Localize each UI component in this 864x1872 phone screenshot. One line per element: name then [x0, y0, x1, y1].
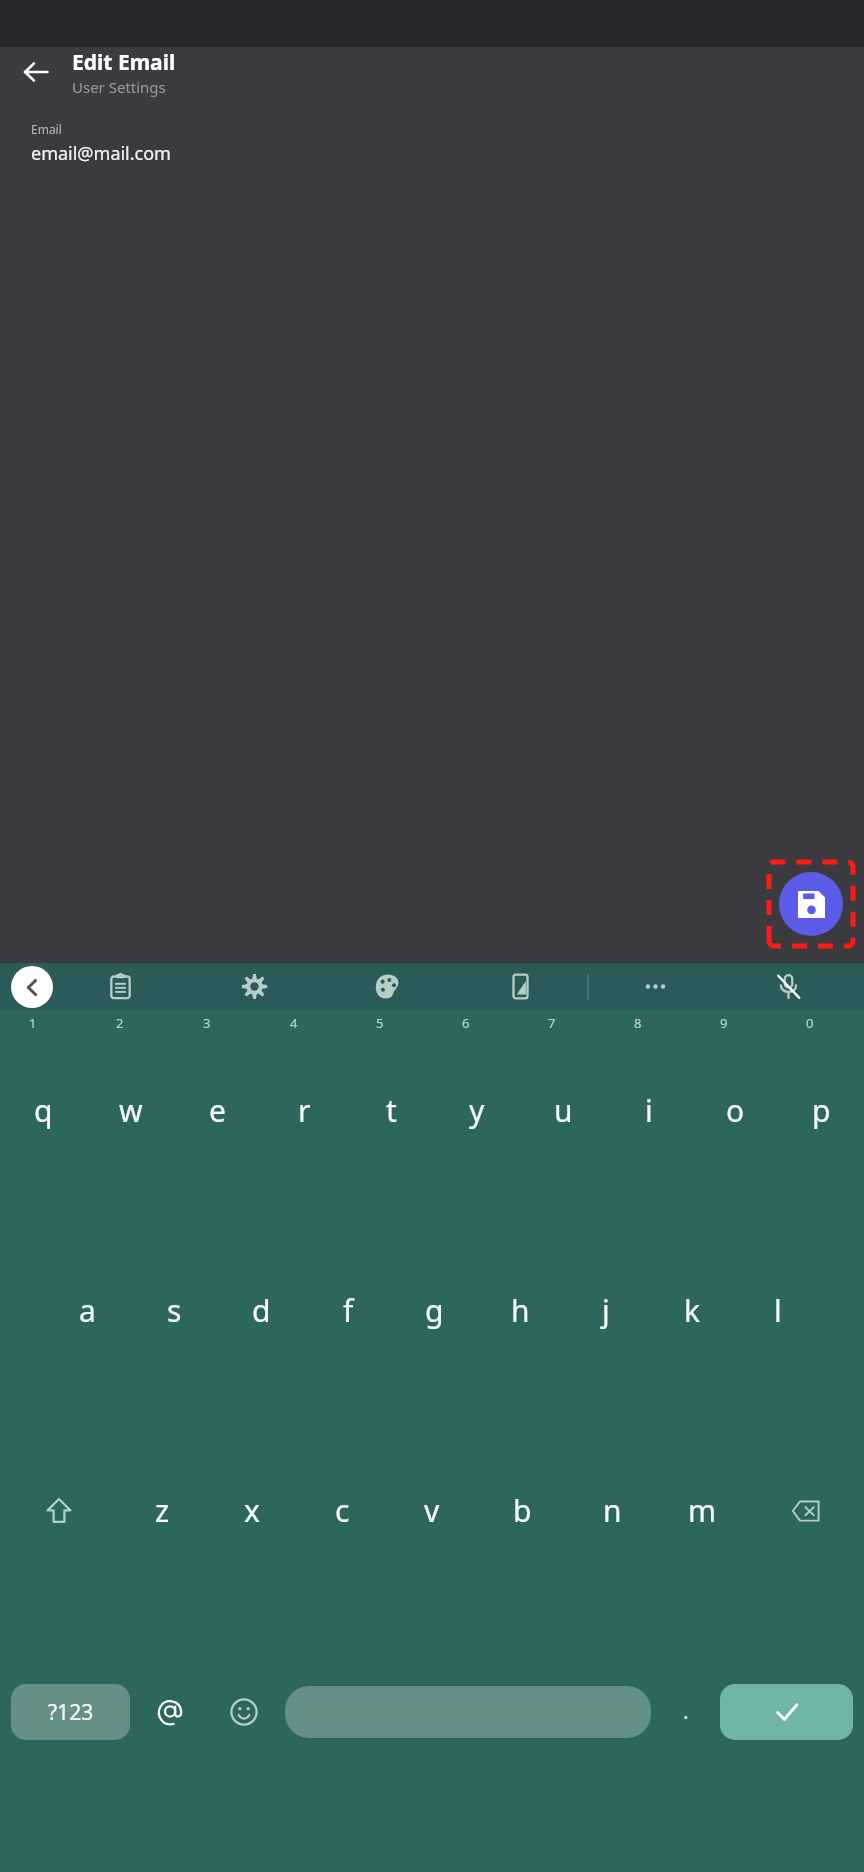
staticText: Edit Email [72, 48, 176, 77]
button[interactable]: 5 [348, 1010, 434, 1210]
staticText: i [645, 1090, 653, 1131]
staticText: p [812, 1090, 831, 1131]
button[interactable]: j [563, 1210, 649, 1410]
staticText: o [726, 1090, 745, 1131]
staticText: r [298, 1090, 311, 1131]
button[interactable]: a [44, 1210, 131, 1410]
button[interactable]: n [567, 1410, 657, 1611]
staticText: c [335, 1490, 350, 1531]
button[interactable]: Backspace [747, 1410, 864, 1611]
staticText: f [343, 1290, 354, 1331]
button[interactable]: One handed mode [454, 963, 587, 1010]
staticText: u [554, 1090, 573, 1131]
staticText: j [602, 1290, 610, 1331]
staticText: s [167, 1290, 182, 1331]
staticText: h [511, 1290, 530, 1331]
staticText: 2 [116, 1014, 124, 1032]
staticText: w [119, 1090, 143, 1131]
button[interactable]: Space [285, 1686, 651, 1738]
staticText: e [209, 1090, 226, 1131]
button[interactable]: m [657, 1410, 747, 1611]
button[interactable]: 1 [0, 1010, 87, 1210]
button[interactable]: 8 [606, 1010, 692, 1210]
button[interactable]: Theme [321, 963, 454, 1010]
button[interactable]: 3 [174, 1010, 261, 1210]
button[interactable]: More options [589, 963, 722, 1010]
staticText: g [425, 1290, 444, 1331]
staticText: 9 [720, 1014, 728, 1032]
button[interactable]: b [477, 1410, 567, 1611]
button[interactable]: Clipboard [53, 963, 187, 1010]
staticText: 3 [203, 1014, 211, 1032]
button[interactable]: h [477, 1210, 563, 1410]
button[interactable]: ?123 [11, 1684, 130, 1740]
staticText: v [424, 1490, 440, 1531]
staticText: 7 [548, 1014, 556, 1032]
button[interactable]: Emoji [207, 1611, 280, 1812]
staticText: User Settings [72, 77, 166, 97]
staticText: 5 [376, 1014, 384, 1032]
button[interactable]: c [297, 1410, 387, 1611]
staticText: y [469, 1090, 485, 1131]
staticText: l [774, 1290, 782, 1331]
staticText: k [684, 1290, 701, 1331]
button[interactable]: f [305, 1210, 391, 1410]
button[interactable]: . [656, 1611, 716, 1812]
staticText: a [79, 1290, 96, 1331]
staticText: b [513, 1490, 532, 1531]
staticText: q [34, 1090, 53, 1131]
button[interactable]: l [735, 1210, 821, 1410]
button[interactable]: Voice input disabled [722, 963, 855, 1010]
staticText: m [688, 1490, 717, 1531]
staticText: ?123 [48, 1698, 94, 1727]
button[interactable]: z [117, 1410, 207, 1611]
button[interactable]: k [649, 1210, 735, 1410]
staticText: 0 [806, 1014, 814, 1032]
staticText: z [155, 1490, 170, 1531]
button[interactable]: 0 [778, 1010, 864, 1210]
staticText: . [683, 1697, 689, 1726]
staticText: 6 [462, 1014, 470, 1032]
button[interactable]: Enter [720, 1684, 853, 1740]
staticText: t [386, 1090, 397, 1131]
button[interactable]: Shift [0, 1410, 117, 1611]
button[interactable]: At sign [134, 1611, 207, 1812]
staticText: email@mail.com [31, 141, 171, 166]
staticText: d [252, 1290, 271, 1331]
button[interactable]: d [218, 1210, 305, 1410]
button[interactable]: x [207, 1410, 297, 1611]
staticText: 1 [29, 1014, 37, 1032]
button[interactable]: 2 [87, 1010, 174, 1210]
button[interactable]: Save [779, 872, 843, 936]
staticText: 8 [634, 1014, 642, 1032]
staticText: 4 [290, 1014, 298, 1032]
button[interactable]: 9 [692, 1010, 778, 1210]
button[interactable]: Settings [187, 963, 321, 1010]
button[interactable]: 4 [261, 1010, 348, 1210]
staticText: n [603, 1490, 622, 1531]
button[interactable]: Collapse toolbar [11, 966, 53, 1008]
button[interactable]: Back [12, 48, 60, 96]
button[interactable]: 7 [520, 1010, 606, 1210]
button[interactable]: v [387, 1410, 477, 1611]
button[interactable]: s [131, 1210, 218, 1410]
button[interactable]: g [391, 1210, 477, 1410]
staticText: Email [31, 121, 62, 137]
staticText: x [244, 1490, 260, 1531]
button[interactable]: 6 [434, 1010, 520, 1210]
